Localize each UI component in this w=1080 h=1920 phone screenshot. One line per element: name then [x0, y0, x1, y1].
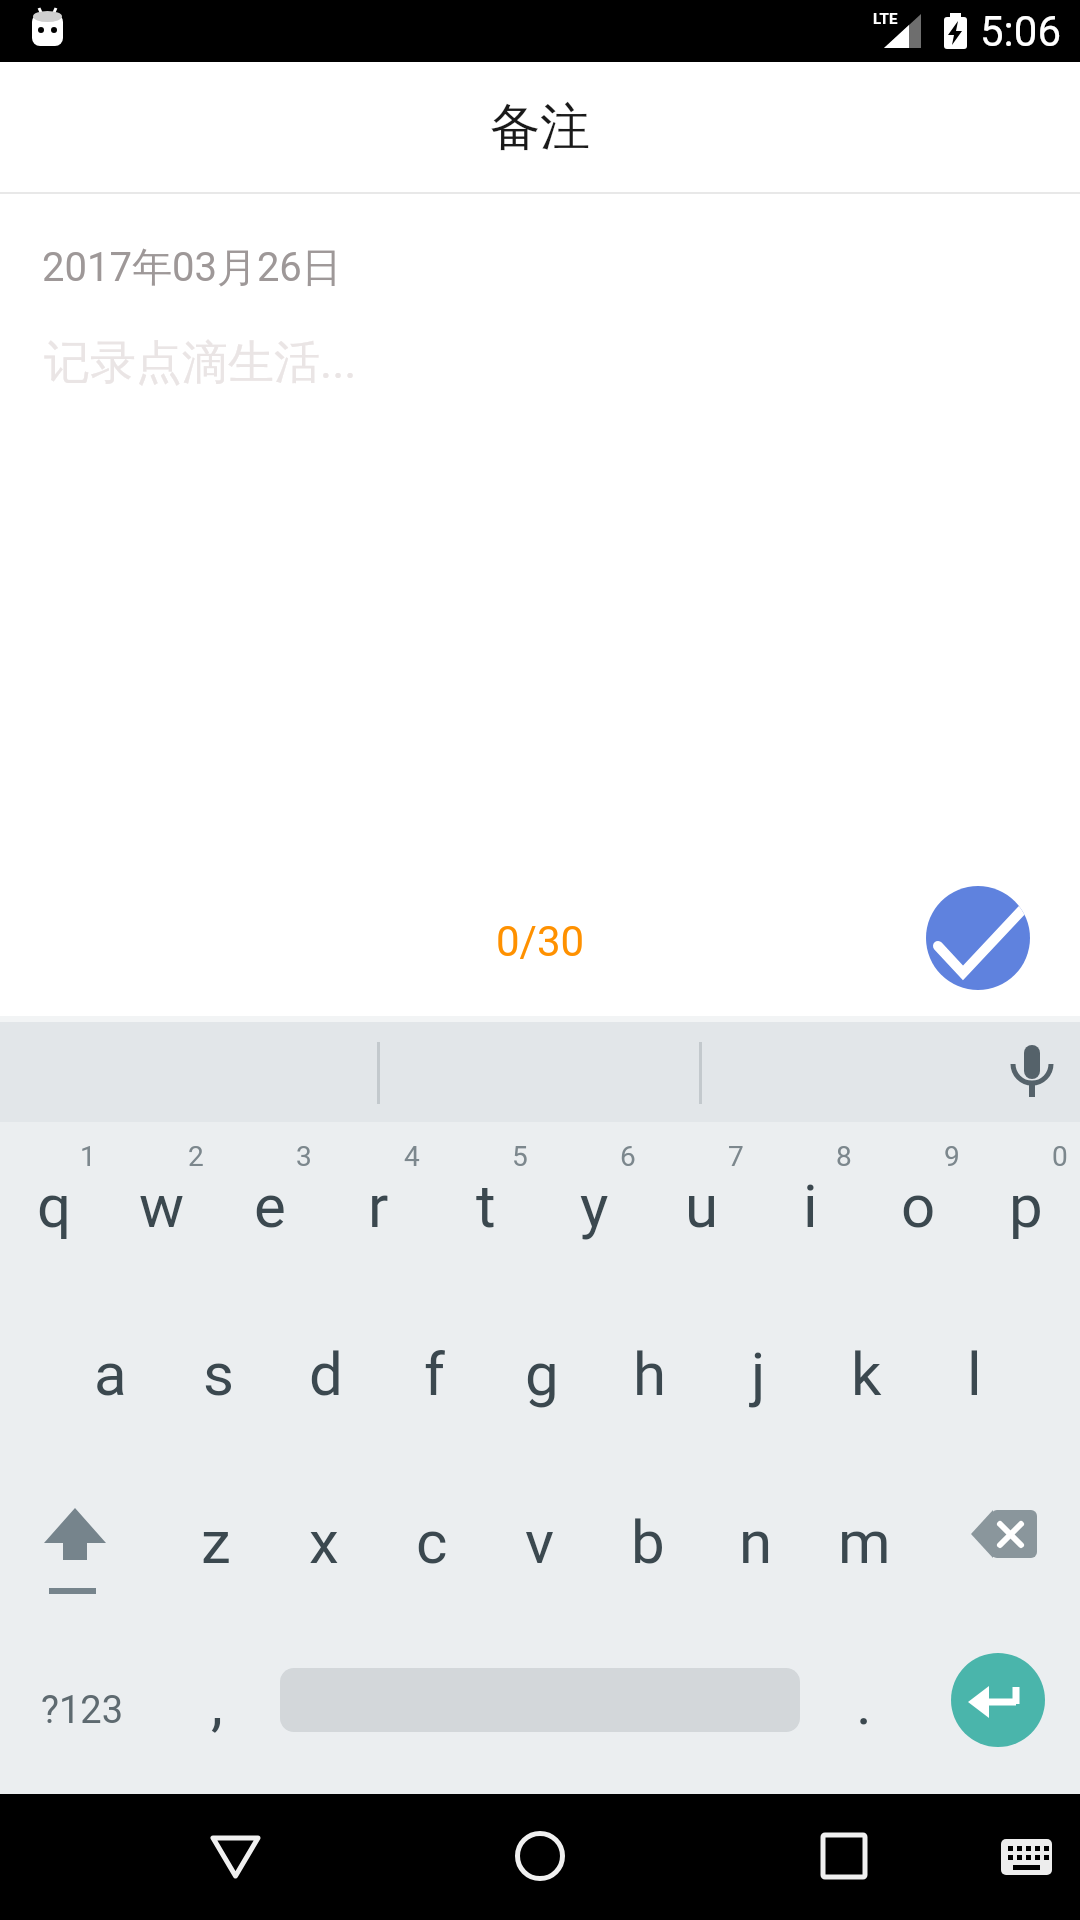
staticText: u	[685, 1171, 719, 1241]
staticText: f	[424, 1339, 445, 1409]
staticText: n	[739, 1507, 773, 1577]
staticText: b	[631, 1507, 665, 1577]
button[interactable]: u	[648, 1122, 756, 1290]
button[interactable]: i	[756, 1122, 864, 1290]
button[interactable]: f	[380, 1290, 488, 1458]
staticText: 1	[80, 1140, 96, 1173]
staticText: r	[368, 1171, 389, 1241]
staticText: 2017年03月26日	[42, 242, 342, 292]
staticText: g	[525, 1339, 559, 1409]
button[interactable]	[185, 1810, 285, 1902]
staticText: LTE	[873, 10, 898, 28]
staticText: l	[967, 1339, 982, 1409]
button[interactable]: b	[594, 1458, 702, 1626]
staticText: 5:06	[980, 7, 1061, 55]
button[interactable]: v	[486, 1458, 594, 1626]
button[interactable]: ,	[164, 1619, 270, 1787]
button[interactable]: r	[324, 1122, 432, 1290]
button[interactable]	[926, 1458, 1080, 1626]
staticText: ?123	[41, 1688, 124, 1733]
button[interactable]	[0, 1458, 162, 1626]
staticText: 3	[296, 1140, 312, 1173]
button[interactable]: z	[162, 1458, 270, 1626]
button[interactable]: c	[378, 1458, 486, 1626]
staticText: p	[1009, 1171, 1043, 1241]
button[interactable]: y	[540, 1122, 648, 1290]
staticText: o	[901, 1171, 936, 1241]
staticText: e	[254, 1171, 286, 1241]
staticText: 6	[620, 1140, 636, 1173]
button[interactable]	[490, 1810, 590, 1902]
button[interactable]: g	[488, 1290, 596, 1458]
staticText: s	[203, 1339, 234, 1409]
staticText: i	[803, 1171, 818, 1241]
staticText: ,	[211, 1668, 223, 1738]
staticText: j	[751, 1339, 766, 1409]
button[interactable]	[926, 886, 1030, 990]
staticText: x	[309, 1507, 339, 1577]
staticText: 4	[404, 1140, 420, 1173]
staticText: y	[580, 1171, 609, 1241]
button[interactable]: p	[972, 1122, 1080, 1290]
button[interactable]: w	[108, 1122, 216, 1290]
staticText: 9	[944, 1140, 960, 1173]
staticText: z	[201, 1507, 231, 1577]
staticText: 7	[728, 1140, 744, 1173]
button[interactable]: o	[864, 1122, 972, 1290]
staticText: .	[856, 1668, 872, 1738]
staticText: 2	[188, 1140, 204, 1173]
button[interactable]: m	[810, 1458, 918, 1626]
staticText: h	[633, 1339, 667, 1409]
button[interactable]: k	[812, 1290, 920, 1458]
button[interactable]: a	[56, 1290, 164, 1458]
staticText: t	[476, 1171, 496, 1241]
staticText: k	[851, 1339, 882, 1409]
staticText: q	[37, 1171, 72, 1241]
staticText: 5	[512, 1140, 528, 1173]
button[interactable]	[795, 1810, 895, 1902]
button[interactable]: e	[216, 1122, 324, 1290]
staticText: 8	[836, 1140, 852, 1173]
button[interactable]: n	[702, 1458, 810, 1626]
staticText: 0	[1052, 1140, 1068, 1173]
staticText: 备注	[490, 96, 590, 159]
button[interactable]: j	[704, 1290, 812, 1458]
button[interactable]: l	[920, 1290, 1028, 1458]
staticText: m	[838, 1507, 891, 1577]
button[interactable]	[951, 1653, 1045, 1747]
staticText: 0/30	[496, 917, 585, 966]
button[interactable]: .	[810, 1619, 918, 1787]
button[interactable]: t	[432, 1122, 540, 1290]
staticText: 记录点滴生活...	[44, 334, 357, 392]
button[interactable]: x	[270, 1458, 378, 1626]
button[interactable]: d	[272, 1290, 380, 1458]
button[interactable]: s	[164, 1290, 272, 1458]
staticText: d	[309, 1339, 343, 1409]
button[interactable]: q	[0, 1122, 108, 1290]
staticText: w	[139, 1171, 185, 1241]
staticText: a	[94, 1339, 127, 1409]
button[interactable]: ?123	[0, 1626, 164, 1794]
staticText: v	[525, 1507, 555, 1577]
staticText: c	[416, 1507, 448, 1577]
button[interactable]: h	[596, 1290, 704, 1458]
